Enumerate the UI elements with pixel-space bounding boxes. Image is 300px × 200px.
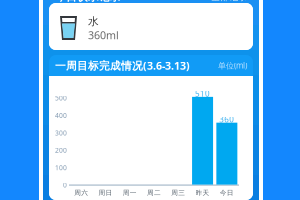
- staticText: 400: [55, 111, 67, 120]
- staticText: 周六: [74, 189, 88, 197]
- staticText: 周一: [123, 189, 137, 197]
- staticText: 水: [88, 15, 99, 28]
- staticText: 500: [55, 94, 67, 102]
- staticText: 360ml: [88, 28, 119, 42]
- staticText: 全部记录: [211, 0, 247, 3]
- staticText: 100: [55, 163, 67, 172]
- staticText: 周二: [147, 189, 161, 197]
- staticText: 510: [195, 88, 210, 99]
- staticText: 0: [63, 181, 67, 189]
- staticText: 300: [55, 128, 67, 137]
- button[interactable]: 水: [49, 3, 253, 50]
- staticText: 周日: [98, 189, 112, 197]
- staticText: 今日饮水记录: [55, 0, 121, 3]
- staticText: 单位(ml): [218, 60, 247, 71]
- staticText: 今日: [220, 189, 234, 197]
- staticText: 一周目标完成情况(3.6-3.13): [55, 58, 190, 73]
- staticText: 昨天: [196, 189, 210, 197]
- staticText: 200: [55, 146, 67, 155]
- staticText: 周三: [171, 189, 185, 197]
- staticText: 360: [219, 114, 234, 125]
